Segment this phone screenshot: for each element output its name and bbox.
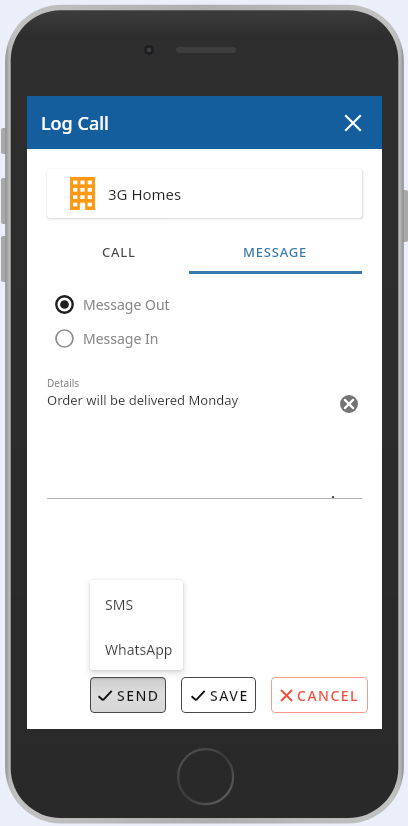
staticText: SAVE (210, 686, 249, 705)
staticText: SMS (105, 595, 134, 614)
staticText: WhatsApp (105, 640, 173, 659)
button[interactable]: SAVE (181, 677, 256, 713)
button[interactable]: MESSAGE (189, 235, 362, 274)
button[interactable]: 3G Homes (47, 169, 362, 218)
button[interactable]: Clear details (336, 391, 361, 416)
staticText: Message Out (83, 295, 170, 314)
staticText: Order will be delivered Monday (47, 391, 239, 409)
staticText: 3G Homes (108, 184, 182, 204)
staticText: Message In (83, 329, 159, 348)
staticText: CANCEL (297, 686, 360, 705)
button[interactable]: CANCEL (271, 677, 368, 713)
button[interactable]: SEND (90, 677, 166, 713)
staticText: Log Call (41, 111, 109, 136)
button[interactable]: Message Out (55, 290, 255, 319)
button[interactable]: Message In (55, 324, 255, 353)
staticText: SEND (117, 686, 160, 705)
button[interactable]: SMS (90, 580, 183, 625)
staticText: MESSAGE (243, 243, 308, 261)
button[interactable]: WhatsApp (90, 625, 183, 670)
staticText: Details (47, 376, 80, 390)
button[interactable]: Close dialog (331, 101, 375, 145)
staticText: CALL (102, 243, 136, 261)
button[interactable]: CALL (47, 235, 190, 269)
